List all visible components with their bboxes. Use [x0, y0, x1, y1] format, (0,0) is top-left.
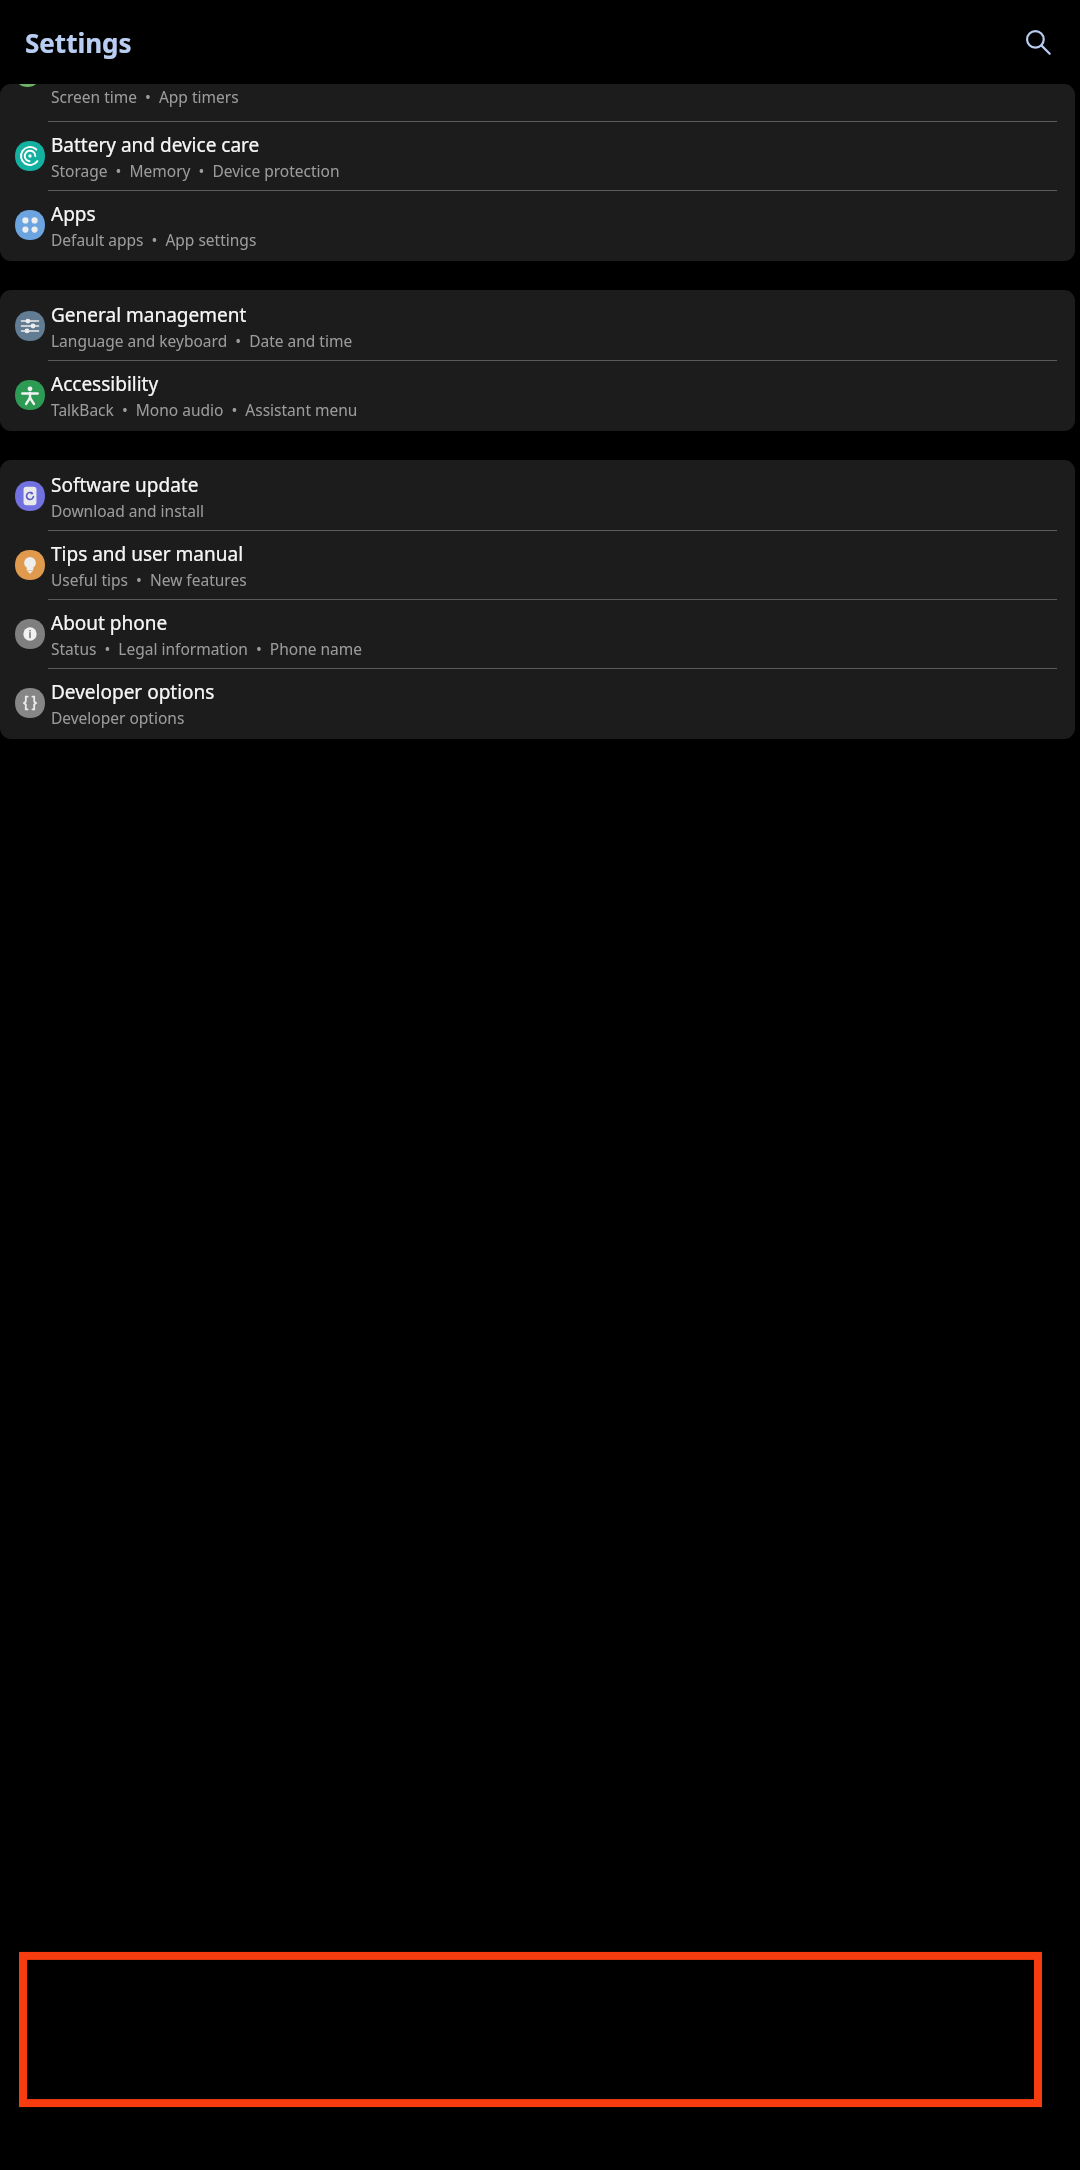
button[interactable]: Apps — [0, 191, 1075, 259]
staticText: About phone — [51, 610, 168, 636]
button[interactable]: Software update — [0, 462, 1075, 530]
staticText: Apps — [51, 201, 96, 227]
staticText: Software update — [51, 472, 199, 498]
staticText: Battery and device care — [51, 132, 260, 158]
staticText: TalkBack • Mono audio • Assistant menu — [51, 399, 358, 420]
staticText: Storage • Memory • Device protection — [51, 160, 340, 181]
staticText: Default apps • App settings — [51, 229, 257, 250]
button[interactable]: Tips and user manual — [0, 531, 1075, 599]
staticText: Developer options — [51, 707, 185, 728]
button[interactable]: Developer options — [0, 669, 1075, 737]
staticText: Language and keyboard • Date and time — [51, 330, 353, 351]
button[interactable]: Battery and device care — [0, 122, 1075, 190]
staticText: Status • Legal information • Phone name — [51, 638, 363, 659]
button[interactable]: Search — [1016, 20, 1060, 64]
staticText: Tips and user manual — [51, 541, 244, 567]
staticText: Developer options — [51, 679, 215, 705]
button[interactable]: Accessibility — [0, 361, 1075, 429]
button[interactable]: About phone — [0, 600, 1075, 668]
button[interactable]: Screen time • App timers — [0, 84, 1075, 109]
staticText: General management — [51, 302, 247, 328]
button[interactable]: General management — [0, 292, 1075, 360]
staticText: Download and install — [51, 500, 204, 521]
staticText: Accessibility — [51, 371, 159, 397]
staticText: Settings — [25, 25, 132, 60]
staticText: Screen time • App timers — [51, 86, 239, 107]
staticText: Useful tips • New features — [51, 569, 247, 590]
